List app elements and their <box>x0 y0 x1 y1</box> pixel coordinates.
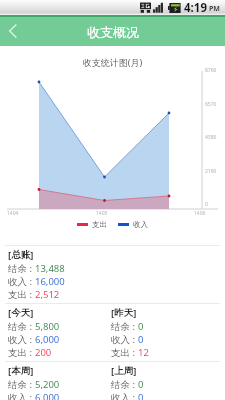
staticText: : <box>27 262 35 275</box>
staticText: : <box>27 320 35 333</box>
staticText: : <box>27 275 35 288</box>
staticText: [本周] <box>8 364 34 377</box>
staticText: : <box>27 378 35 391</box>
staticText: [昨天] <box>111 306 137 319</box>
staticText: 0 <box>205 201 208 208</box>
staticText: 收支概况 <box>87 24 139 40</box>
staticText: 结余 <box>8 321 27 333</box>
staticText: : <box>130 378 138 391</box>
staticText: 收入 <box>133 220 148 229</box>
staticText: 收入 <box>8 392 27 400</box>
staticText: 1404 <box>7 210 19 217</box>
staticText: 6570 <box>205 101 217 108</box>
staticText: 0 <box>138 391 144 400</box>
staticText: 收入 <box>8 334 27 346</box>
staticText: 0 <box>138 320 144 333</box>
staticText: 0 <box>138 378 144 391</box>
staticText: 结余 <box>111 321 130 333</box>
staticText: 5,200 <box>35 378 60 391</box>
button[interactable]: [本周] <box>0 361 225 400</box>
staticText: 8760 <box>205 67 217 74</box>
staticText: 1405 <box>96 210 108 217</box>
button[interactable]: Back <box>0 15 26 46</box>
staticText: : <box>27 288 35 301</box>
staticText: 4380 <box>205 134 217 141</box>
staticText: 5,800 <box>35 320 60 333</box>
staticText: 2190 <box>205 168 217 175</box>
staticText: : <box>130 346 138 359</box>
button[interactable]: [总账] <box>0 245 225 303</box>
staticText: PM <box>209 4 220 14</box>
staticText: 200 <box>35 346 52 359</box>
staticText: 支出 <box>111 347 130 359</box>
staticText: 12 <box>138 346 149 359</box>
staticText: 支出 <box>8 289 27 301</box>
staticText: [总账] <box>8 248 34 261</box>
staticText: 结余 <box>8 379 27 391</box>
staticText: 4:19 <box>184 0 207 15</box>
button[interactable]: [今天] <box>0 303 225 361</box>
staticText: 收入 <box>111 334 130 346</box>
staticText: 6,000 <box>35 391 60 400</box>
staticText: : <box>130 320 138 333</box>
staticText: 收入 <box>111 392 130 400</box>
staticText: 支出 <box>8 347 27 359</box>
staticText: 结余 <box>111 379 130 391</box>
staticText: : <box>27 391 35 400</box>
staticText: 结余 <box>8 263 27 275</box>
staticText: : <box>27 346 35 359</box>
staticText: 2,512 <box>35 288 60 301</box>
staticText: [上周] <box>111 364 137 377</box>
staticText: 1406 <box>194 210 206 217</box>
staticText: 6,000 <box>35 333 60 346</box>
staticText: 0 <box>138 333 144 346</box>
staticText: 13,488 <box>35 262 65 275</box>
staticText: [今天] <box>8 306 34 319</box>
staticText: : <box>130 391 138 400</box>
staticText: 收支统计图(月) <box>0 56 225 68</box>
staticText: 支出 <box>92 220 107 229</box>
staticText: : <box>27 333 35 346</box>
staticText: : <box>130 333 138 346</box>
staticText: 16,000 <box>35 275 65 288</box>
staticText: 收入 <box>8 276 27 288</box>
